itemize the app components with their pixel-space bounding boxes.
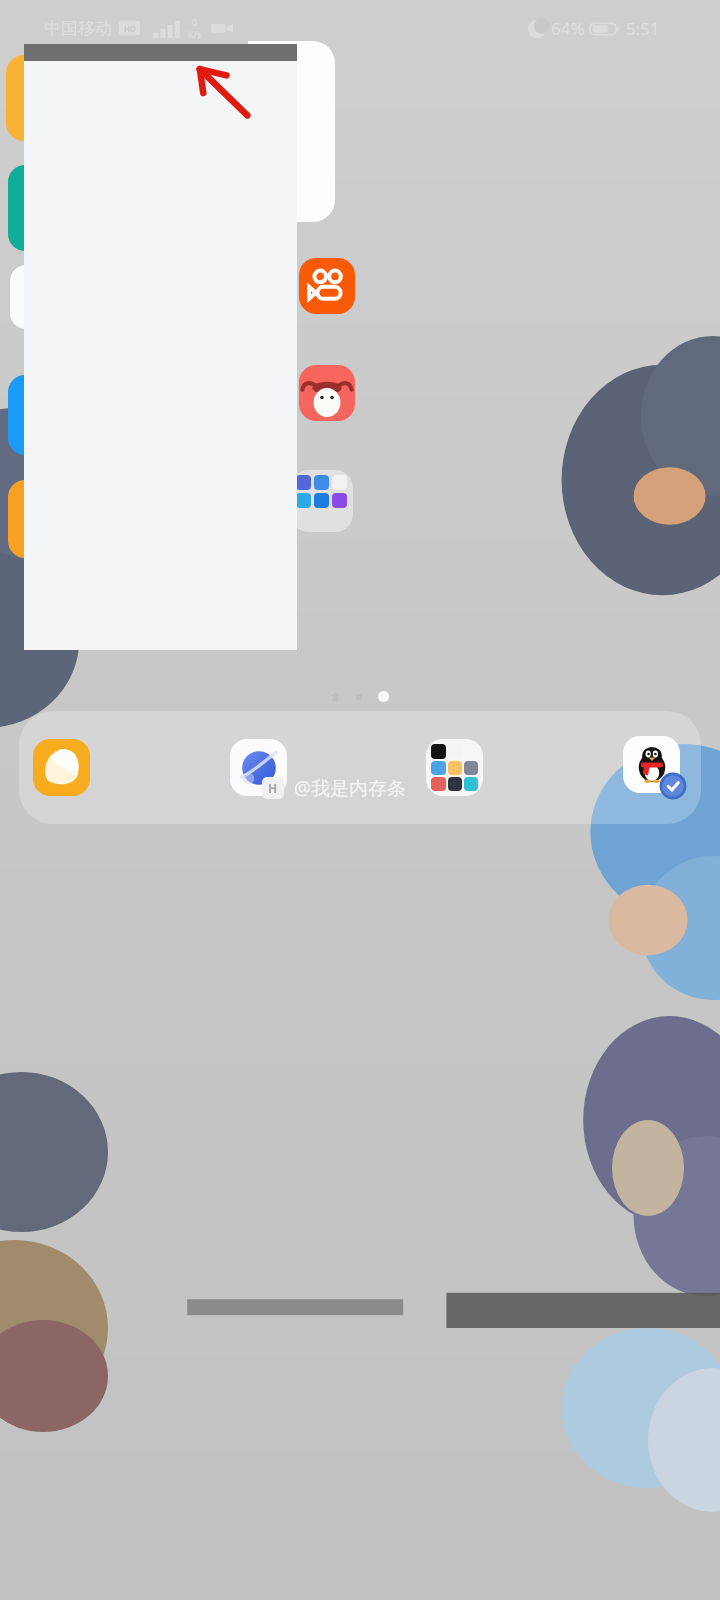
staticText: 5:51 (626, 17, 660, 40)
staticText: 0 (192, 16, 198, 28)
button[interactable]: Themes (33, 739, 90, 796)
staticText: K/s (188, 28, 202, 40)
staticText: HD (124, 23, 136, 34)
button[interactable]: QQ (623, 736, 680, 793)
staticText: 中国移动 (44, 18, 112, 39)
button[interactable]: App bar (24, 44, 297, 650)
staticText: H (268, 780, 278, 796)
staticText: @我是内存条 (294, 775, 407, 801)
button[interactable]: App folder (426, 739, 483, 796)
staticText: 64% (551, 17, 585, 40)
button[interactable]: Browser (230, 739, 287, 796)
